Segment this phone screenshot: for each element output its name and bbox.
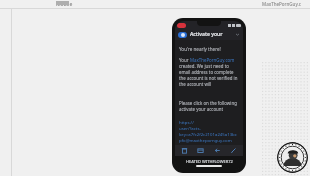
staticText: You're nearly there! [179, 46, 221, 52]
staticText: pfo@maxthepornguy.com [179, 137, 232, 143]
button[interactable]: Archive [196, 146, 205, 155]
staticText: Mobile [56, 1, 73, 8]
staticText: user/?acts- [179, 125, 201, 131]
staticText: MaxThePornGuy.c [262, 1, 302, 7]
staticText: created. We just need to verify your [179, 63, 239, 69]
staticText: Your [179, 57, 190, 63]
staticText: activate your account [179, 106, 224, 112]
button[interactable]: MaxThePornGuy logo [277, 142, 308, 173]
other: Expand [235, 32, 240, 37]
staticText: https://www.maxthepornguy.com/ [179, 119, 239, 125]
button[interactable]: https://www.maxthepornguy.com/ [179, 119, 239, 143]
button[interactable]: Compose [229, 146, 238, 155]
button[interactable]: Activate your new... [175, 29, 243, 40]
staticText: the account will automatically delete. [179, 81, 239, 87]
staticText: Activate your new... [190, 31, 233, 38]
staticText: email address to complete signup. If [179, 69, 239, 75]
button[interactable]: MaxThePornGuy.com [190, 57, 235, 63]
button[interactable]: Delete [180, 146, 189, 155]
staticText: HEATED WITHFLOWER72 [186, 159, 233, 164]
button[interactable]: Mobile [52, 0, 77, 9]
staticText: the account is not verified in 24 hours [179, 75, 239, 81]
button[interactable]: Reply [213, 146, 222, 155]
staticText: Please click on the following link to [179, 100, 239, 106]
staticText: key=a7fc2f2c2101a245a13bcnatcher [179, 131, 239, 137]
